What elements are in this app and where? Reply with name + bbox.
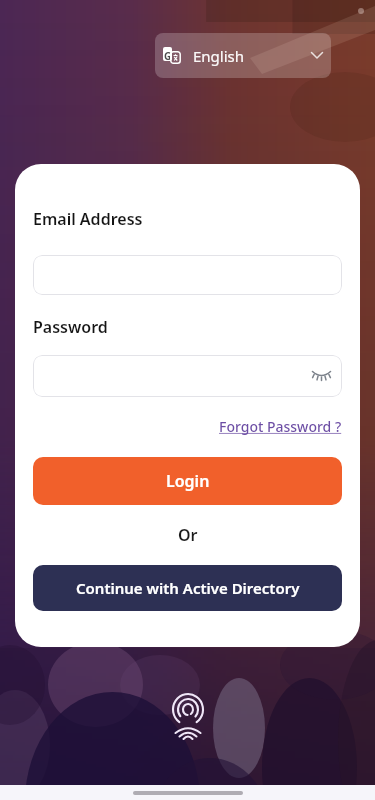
button[interactable]: Continue with Active Directory bbox=[33, 565, 342, 611]
staticText: Password bbox=[33, 316, 108, 338]
staticText: Login bbox=[166, 470, 210, 492]
button[interactable]: Forgot Password ? bbox=[219, 417, 342, 436]
button[interactable]: Login bbox=[33, 457, 342, 505]
button[interactable] bbox=[33, 355, 342, 397]
button[interactable]: G bbox=[155, 33, 331, 78]
staticText: Forgot Password ? bbox=[219, 417, 342, 436]
button[interactable] bbox=[170, 693, 206, 739]
button[interactable] bbox=[33, 255, 342, 295]
staticText: English bbox=[193, 46, 245, 66]
staticText: Continue with Active Directory bbox=[76, 578, 300, 598]
staticText: G bbox=[164, 49, 172, 63]
staticText: Or bbox=[178, 524, 198, 546]
staticText: Email Address bbox=[33, 208, 143, 230]
